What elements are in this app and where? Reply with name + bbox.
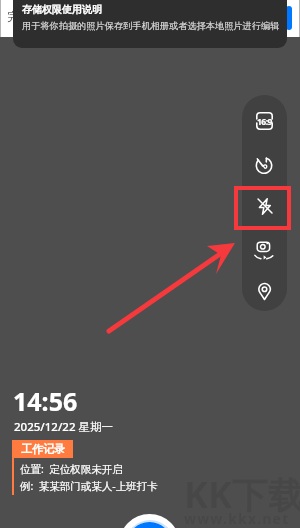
staticText: 完成 bbox=[7, 9, 31, 24]
button[interactable]: Switch camera bbox=[254, 241, 274, 261]
staticText: 16:9 bbox=[257, 116, 272, 128]
button[interactable]: Location bbox=[255, 282, 274, 301]
staticText: 14:56 bbox=[13, 384, 78, 418]
button[interactable]: Timer bbox=[255, 156, 273, 174]
staticText: 位置: 定位权限未开启 bbox=[20, 462, 123, 476]
button[interactable]: Flash off bbox=[256, 198, 273, 215]
staticText: 存储权限使用说明 bbox=[22, 3, 102, 16]
staticText: 例: 某某部门或某人-上班打卡 bbox=[20, 479, 158, 493]
button[interactable]: Shutter bbox=[119, 514, 180, 528]
staticText: 2025/12/22 星期一 bbox=[14, 419, 113, 435]
button[interactable]: Allow bbox=[286, 6, 292, 30]
staticText: 用于将你拍摄的照片保存到手机相册或者选择本地照片进行编辑 bbox=[22, 20, 280, 32]
button[interactable]: 工作记录 bbox=[12, 440, 73, 458]
staticText: 工作记录 bbox=[21, 442, 65, 456]
button[interactable]: Aspect ratio 16 by 9 bbox=[256, 112, 273, 130]
